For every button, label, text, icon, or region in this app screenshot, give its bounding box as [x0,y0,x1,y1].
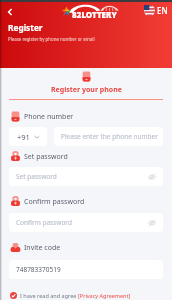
button[interactable]: Show password [147,218,157,228]
button[interactable]: I have read and agree [10,292,131,299]
staticText: [Privacy Agreement] [78,292,131,299]
staticText: 748783370519 [16,265,61,274]
button[interactable]: Back [2,4,18,20]
staticText: +91 [17,132,30,142]
staticText: Confirm password [24,197,85,207]
button[interactable]: 748783370519 [9,260,163,279]
button[interactable]: +91 [9,127,47,146]
staticText: Please register by phone number or email [8,36,95,42]
staticText: Register your phone [51,85,122,95]
staticText: Invite code [24,243,61,253]
staticText: Set password [16,172,57,181]
button[interactable]: EN [144,5,168,16]
staticText: I have read and agree [20,292,78,299]
button[interactable]: Show password [147,172,157,182]
staticText: Register [8,22,43,33]
button[interactable]: Set password [9,167,163,186]
staticText: Phone number [24,112,74,122]
staticText: Confirm password [16,218,72,227]
button[interactable]: Register your phone [0,71,172,95]
staticText: Set password [24,152,68,162]
staticText: EN [157,5,168,16]
staticText: 82LOTTERY [72,9,117,20]
button[interactable]: Confirm password [9,213,163,232]
button[interactable]: Please enter the phone number [54,127,163,146]
staticText: Please enter the phone number [61,132,158,141]
